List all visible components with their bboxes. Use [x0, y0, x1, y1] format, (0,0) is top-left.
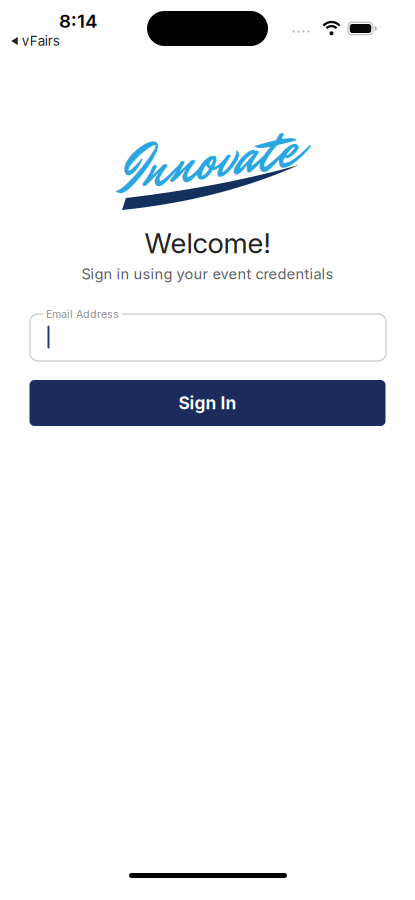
staticText: Sign in using your event credentials — [81, 265, 333, 283]
staticText: Welcome! — [144, 226, 270, 259]
staticText: Sign In — [178, 393, 236, 413]
staticText: Innovate — [121, 118, 298, 202]
staticText: 8:14 — [59, 10, 97, 32]
button[interactable]: Email Address — [30, 314, 386, 361]
button[interactable]: Sign In — [29, 380, 385, 426]
staticText: Email Address — [46, 308, 119, 320]
staticText: vFairs — [22, 33, 60, 49]
button[interactable]: Back to vFairs — [11, 33, 60, 49]
